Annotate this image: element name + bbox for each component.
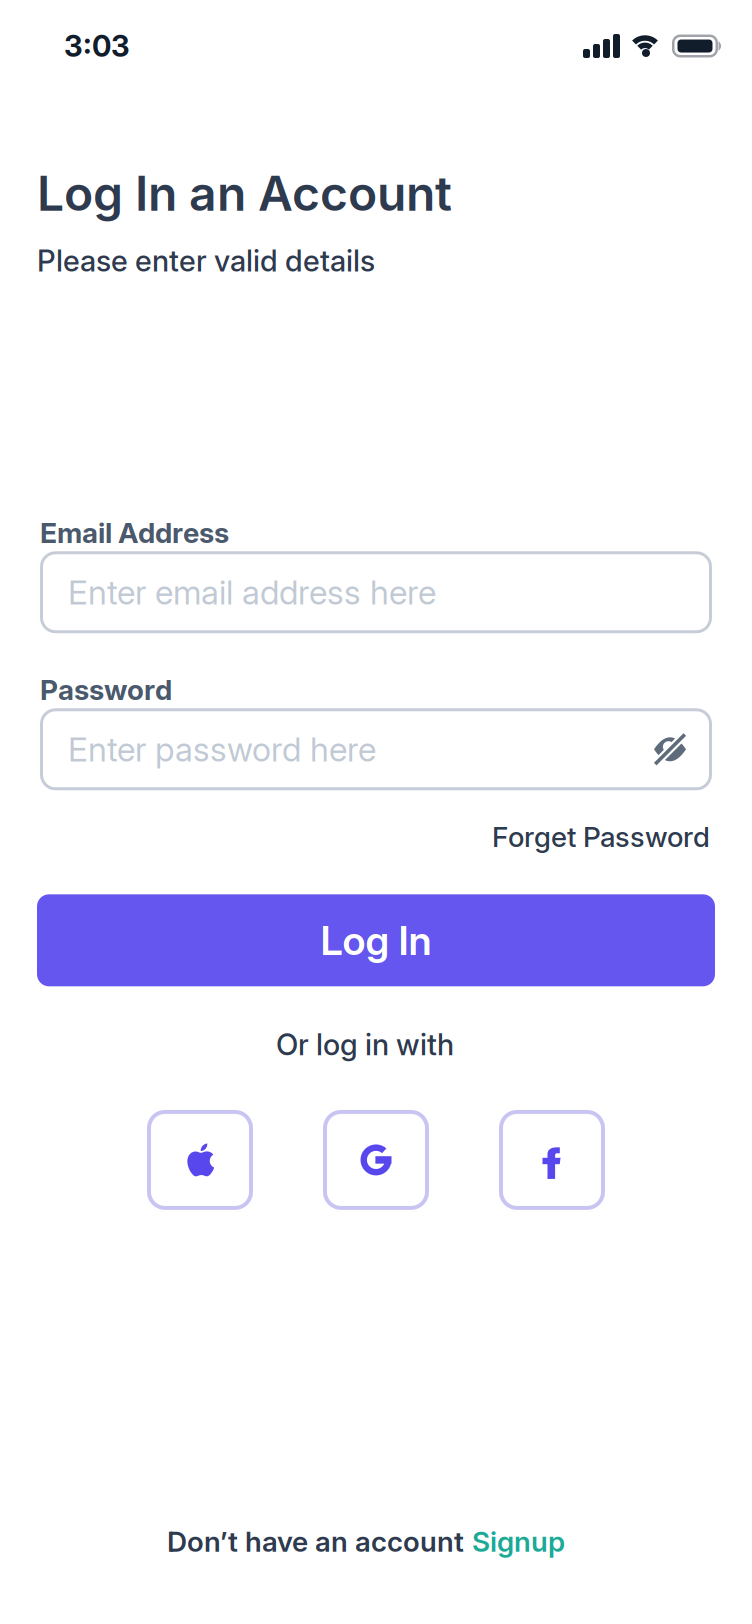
button[interactable]: Log In <box>37 894 715 986</box>
button[interactable]: Forget Password <box>492 820 710 853</box>
button[interactable]: Log in with Google <box>323 1110 429 1210</box>
button[interactable]: Show password <box>652 731 688 767</box>
staticText: Email Address <box>40 516 229 549</box>
staticText: Enter email address here <box>68 573 436 612</box>
button[interactable]: Log in with Facebook <box>499 1110 605 1210</box>
staticText: Password <box>40 673 172 706</box>
staticText: Forget Password <box>492 820 710 853</box>
staticText: Signup <box>472 1525 565 1558</box>
staticText: Log In <box>320 917 431 964</box>
button[interactable]: Signup <box>472 1525 565 1558</box>
button[interactable]: Log in with Apple <box>147 1110 253 1210</box>
staticText: Enter password here <box>68 730 376 769</box>
staticText: 3:03 <box>64 29 130 63</box>
staticText: Don’t have an account <box>167 1525 464 1558</box>
staticText: Or log in with <box>276 1027 454 1062</box>
staticText: Log In an Account <box>37 165 452 222</box>
staticText: Please enter valid details <box>37 244 375 278</box>
